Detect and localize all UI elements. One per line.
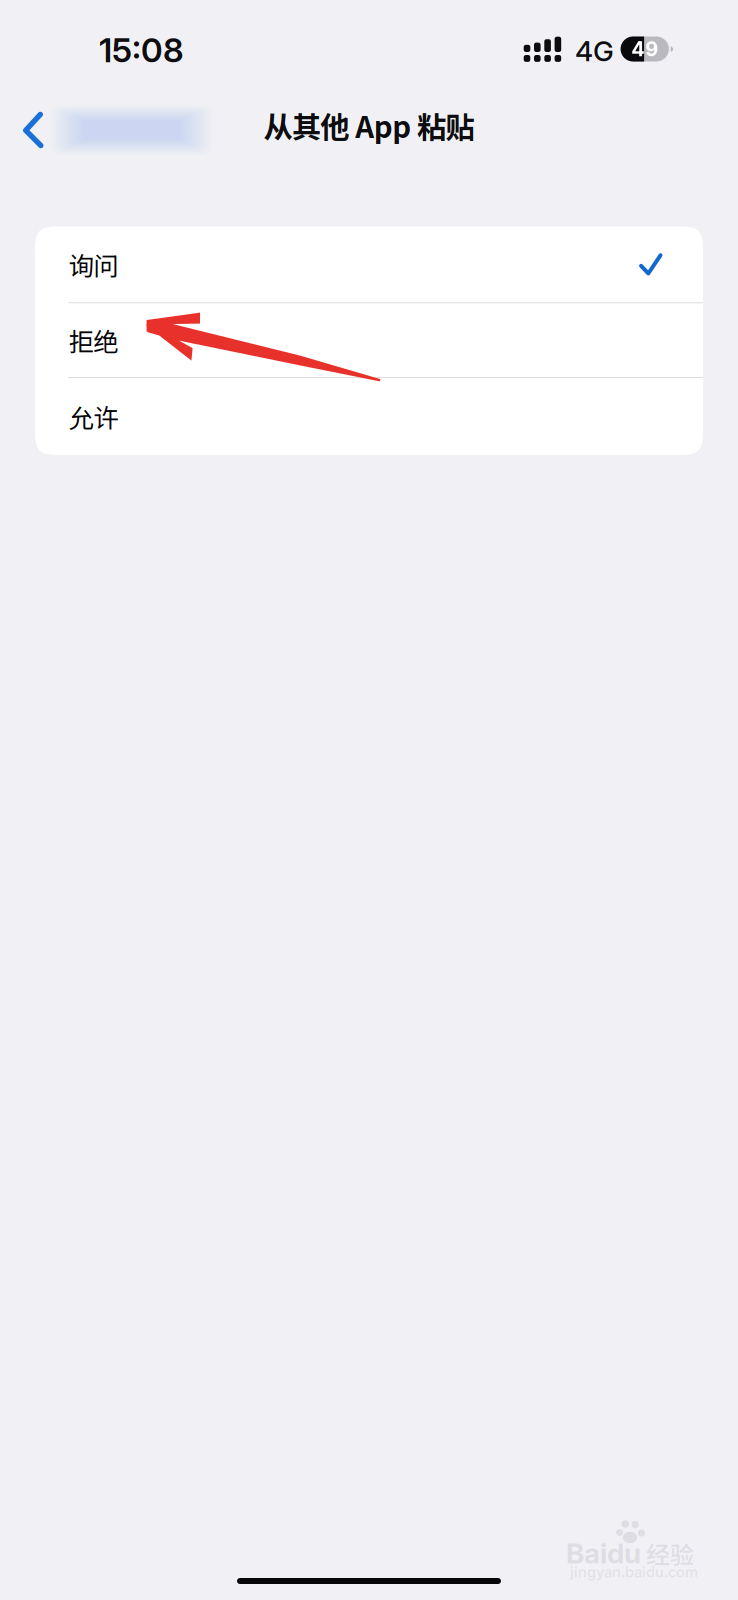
- staticText: 49: [631, 37, 658, 61]
- staticText: 允许: [68, 398, 118, 435]
- staticText: 拒绝: [68, 322, 118, 359]
- staticText: 询问: [68, 246, 118, 283]
- staticText: 15:08: [99, 30, 184, 70]
- button[interactable]: Back: [0, 97, 212, 163]
- button[interactable]: 拒绝: [35, 303, 703, 378]
- staticText: Baidu: [566, 1536, 641, 1570]
- staticText: 经验: [646, 1536, 694, 1571]
- staticText: 从其他 App 粘贴: [263, 104, 475, 146]
- button[interactable]: 允许: [35, 378, 703, 455]
- button[interactable]: 询问: [35, 226, 703, 303]
- staticText: jingyan.baidu.com: [570, 1563, 698, 1581]
- staticText: 4G: [575, 34, 614, 68]
